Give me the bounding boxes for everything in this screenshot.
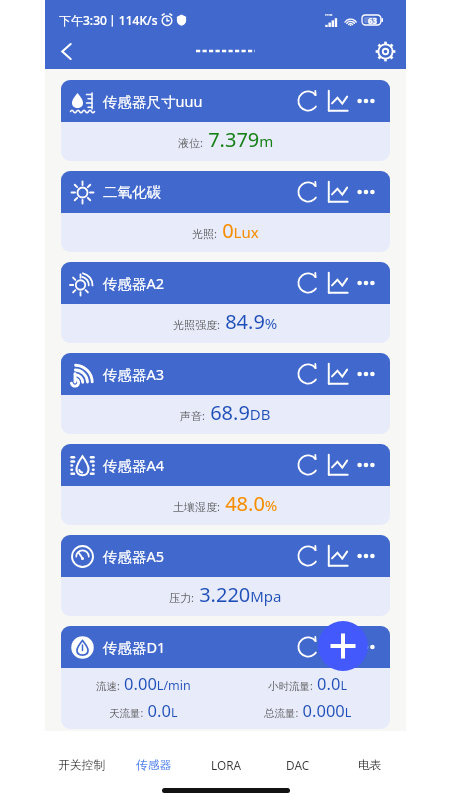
staticText: 传感器A2 (103, 273, 165, 293)
button[interactable]: Refresh (296, 544, 320, 568)
button[interactable]: 传感器A4 (61, 444, 390, 525)
button[interactable]: More (356, 273, 376, 293)
button[interactable]: 传感器尺寸uuu (61, 80, 390, 161)
button[interactable]: More (356, 546, 376, 566)
staticText: 土壤湿度: 48.0% (173, 490, 278, 517)
button[interactable]: Chart (325, 361, 352, 388)
button[interactable]: Refresh (296, 271, 320, 295)
button[interactable]: 电表 (334, 731, 406, 795)
button[interactable]: Settings (368, 34, 402, 68)
staticText: LORA (211, 757, 242, 773)
button[interactable]: Chart (325, 179, 352, 206)
button[interactable]: DAC (262, 731, 334, 795)
staticText: 二氧化碳 (103, 183, 161, 201)
button[interactable]: 二氧化碳 (61, 171, 390, 252)
button[interactable]: Add (318, 621, 368, 671)
button[interactable]: 传感器A3 (61, 353, 390, 434)
staticText: 电表 (358, 758, 382, 773)
button[interactable]: More (356, 637, 376, 657)
button[interactable]: Back (49, 34, 83, 68)
staticText: 传感器A3 (103, 364, 165, 384)
staticText: 下午3:30丨114K/s (59, 12, 158, 28)
staticText: 液位: 7.379m (178, 126, 274, 153)
button[interactable]: More (356, 455, 376, 475)
staticText: 压力: 3.220Mpa (169, 581, 282, 608)
button[interactable]: 传感器 (118, 731, 190, 795)
button[interactable]: More (356, 182, 376, 202)
button[interactable]: More (356, 364, 376, 384)
staticText: DAC (286, 757, 310, 773)
staticText: 流速: 0.00L/min (96, 672, 191, 694)
button[interactable]: Chart (325, 88, 352, 115)
button[interactable]: 传感器D1 (61, 626, 390, 729)
button[interactable]: Chart (325, 452, 352, 479)
button[interactable]: 开关控制 (45, 731, 118, 795)
staticText: 开关控制 (58, 758, 106, 773)
button[interactable]: Chart (325, 543, 352, 570)
button[interactable]: Refresh (296, 89, 320, 113)
button[interactable]: Refresh (296, 362, 320, 386)
button[interactable]: Refresh (296, 453, 320, 477)
staticText: 光照强度: 84.9% (173, 308, 278, 335)
staticText: 光照: 0Lux (192, 217, 259, 244)
staticText: 总流量: 0.000L (264, 699, 352, 721)
staticText: 传感器 (136, 758, 172, 773)
staticText: 传感器D1 (103, 637, 166, 657)
staticText: 声音: 68.9DB (180, 399, 271, 426)
button[interactable]: LORA (190, 731, 262, 795)
staticText: 传感器尺寸uuu (103, 91, 203, 111)
button[interactable]: Chart (325, 634, 352, 661)
staticText: 传感器A5 (103, 546, 165, 566)
button[interactable]: 传感器A5 (61, 535, 390, 616)
button[interactable]: Refresh (296, 180, 320, 204)
button[interactable]: 传感器A2 (61, 262, 390, 343)
button[interactable]: Refresh (296, 635, 320, 659)
staticText: 63 (368, 15, 378, 25)
staticText: 小时流量: 0.0L (268, 672, 347, 694)
staticText: 天流量: 0.0L (109, 699, 178, 721)
staticText: 传感器A4 (103, 455, 165, 475)
button[interactable]: More (356, 91, 376, 111)
button[interactable]: Chart (325, 270, 352, 297)
